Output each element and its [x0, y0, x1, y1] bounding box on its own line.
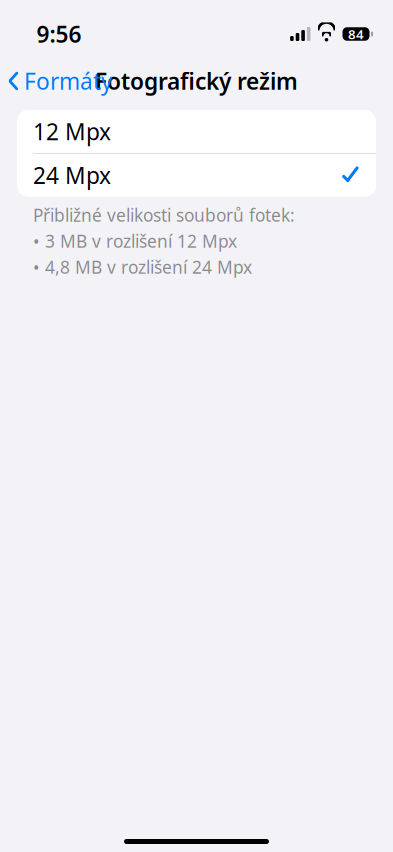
staticText: Fotografický režim — [95, 66, 298, 96]
staticText: 9:56 — [36, 19, 81, 49]
button[interactable]: Formáty — [0, 59, 121, 103]
button[interactable]: 12 Mpx — [17, 110, 376, 153]
button[interactable]: 24 Mpx — [17, 154, 376, 197]
staticText: • 4,8 MB v rozlišení 24 Mpx — [33, 256, 252, 279]
staticText: 24 Mpx — [33, 160, 111, 190]
staticText: 12 Mpx — [33, 116, 111, 146]
staticText: Formáty — [24, 66, 113, 96]
staticText: 84 — [348, 25, 364, 43]
staticText: Přibližné velikosti souborů fotek: — [33, 204, 295, 227]
staticText: • 3 MB v rozlišení 12 Mpx — [33, 230, 237, 253]
